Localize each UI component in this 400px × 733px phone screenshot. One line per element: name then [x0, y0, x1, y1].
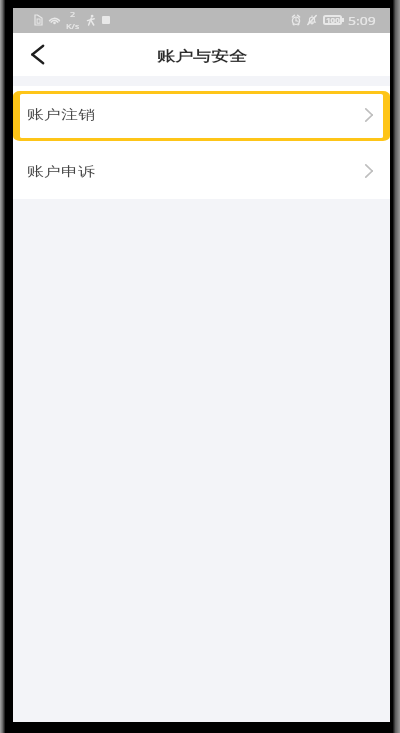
- staticText: 账户与安全: [157, 47, 247, 65]
- staticText: 5:09: [348, 13, 376, 28]
- staticText: 2: [70, 9, 76, 19]
- staticText: 账户申诉: [27, 163, 95, 180]
- button[interactable]: 账户注销: [13, 86, 390, 143]
- staticText: 账户注销: [27, 106, 95, 123]
- button[interactable]: 账户申诉: [13, 143, 390, 199]
- button[interactable]: Back: [15, 33, 59, 76]
- staticText: K/s: [66, 21, 80, 31]
- staticText: 100: [326, 16, 340, 24]
